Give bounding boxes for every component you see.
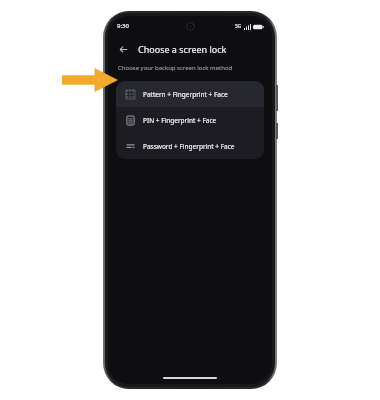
staticText: Pattern + Fingerprint + Face [143,90,228,99]
button[interactable]: Password + Fingerprint + Face [116,133,264,159]
staticText: Choose your backup screen lock method [118,64,233,72]
button[interactable]: Pattern + Fingerprint + Face [116,81,264,107]
staticText: PIN + Fingerprint + Face [143,116,217,125]
staticText: 5G [235,23,242,30]
staticText: Password + Fingerprint + Face [143,142,235,151]
button[interactable]: Back [114,40,132,58]
staticText: 9:30 [117,22,129,30]
staticText: Choose a screen lock [138,43,227,55]
button[interactable]: PIN + Fingerprint + Face [116,107,264,133]
